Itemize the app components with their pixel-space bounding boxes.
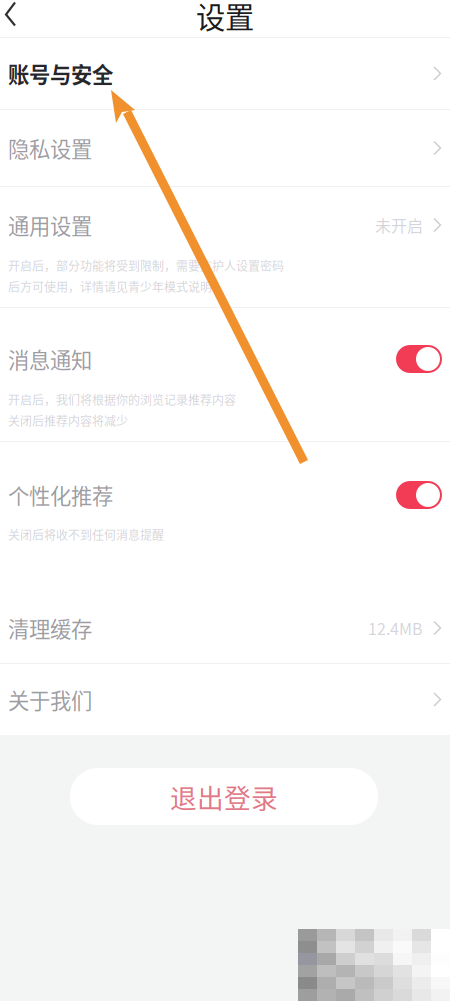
staticText: 未开启	[375, 213, 423, 237]
button[interactable]: 通用设置	[0, 187, 450, 307]
button[interactable]: 个性化推荐	[0, 442, 450, 545]
staticText: 关闭后将收不到任何消息提醒	[8, 526, 164, 543]
staticText: 退出登录	[170, 777, 278, 816]
staticText: 后方可使用，详情请见青少年模式说明	[8, 278, 212, 295]
button[interactable]: 关于我们	[0, 664, 450, 735]
button[interactable]: 消息通知	[0, 308, 450, 441]
staticText: 账号与安全	[8, 58, 113, 89]
staticText: 开启后，我们将根据你的浏览记录推荐内容	[8, 391, 236, 408]
button[interactable]: Back	[0, 6, 25, 30]
staticText: 关闭后推荐内容将减少	[8, 412, 128, 429]
staticText: 消息通知	[8, 344, 92, 374]
staticText: 关于我们	[8, 684, 92, 715]
staticText: 设置	[196, 0, 254, 37]
staticText: 通用设置	[8, 210, 92, 240]
staticText: 开启后，部分功能将受到限制，需要监护人设置密码	[8, 257, 284, 274]
button[interactable]: 清理缓存	[0, 593, 450, 663]
staticText: 个性化推荐	[8, 480, 113, 510]
button[interactable]: 退出登录	[70, 768, 378, 825]
staticText: 12.4MB	[368, 616, 423, 640]
button[interactable]: 账号与安全	[0, 38, 450, 109]
button[interactable]: 隐私设置	[0, 110, 450, 186]
staticText: 清理缓存	[8, 613, 92, 643]
staticText: 隐私设置	[8, 133, 92, 163]
